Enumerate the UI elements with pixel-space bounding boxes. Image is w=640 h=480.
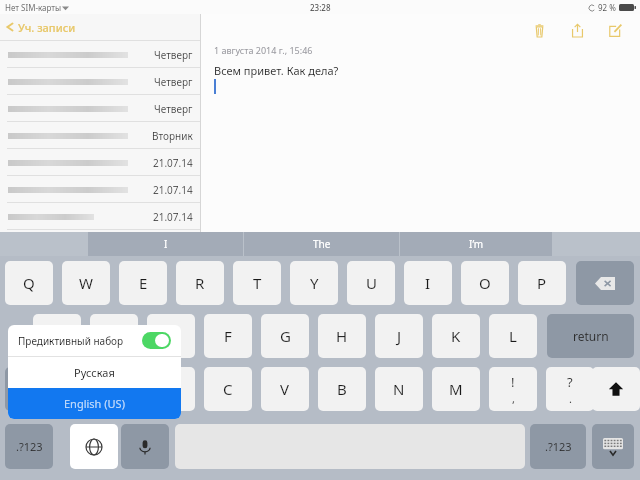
staticText: W [79, 273, 93, 293]
button[interactable]: Shift [5, 367, 81, 411]
staticText: E [139, 273, 148, 293]
staticText: Русская [74, 365, 115, 380]
button[interactable]: Предиктивный набор [8, 325, 181, 356]
button[interactable]: 21.07.14 [0, 203, 200, 230]
staticText: .?123 [545, 439, 572, 454]
button[interactable]: P [518, 261, 566, 305]
staticText: Q [23, 273, 35, 293]
button[interactable]: Delete [526, 17, 552, 43]
button[interactable]: A [33, 314, 81, 358]
staticText: Вторник [152, 129, 193, 143]
staticText: D [166, 326, 177, 346]
staticText: 21.07.14 [153, 183, 193, 197]
staticText: F [224, 326, 232, 346]
staticText: Уч. записи [18, 20, 76, 35]
button[interactable]: Русская [8, 357, 181, 388]
button[interactable]: I’m [400, 232, 552, 256]
staticText: 92 % [598, 2, 616, 13]
staticText: O [479, 273, 491, 293]
button[interactable]: The [244, 232, 399, 256]
staticText: I [425, 273, 431, 293]
button[interactable]: 21.07.14 [0, 149, 200, 176]
button[interactable]: Y [290, 261, 338, 305]
button[interactable]: B [318, 367, 366, 411]
staticText: The [313, 237, 331, 251]
staticText: return [573, 328, 609, 344]
staticText: S [110, 326, 119, 346]
button[interactable]: H [318, 314, 366, 358]
staticText: I [164, 237, 168, 251]
staticText: Четверг [154, 48, 193, 62]
button[interactable]: Q [5, 261, 53, 305]
button[interactable]: O [461, 261, 509, 305]
button[interactable]: Dictation [121, 424, 169, 469]
button[interactable]: T [233, 261, 281, 305]
button[interactable]: Вторник [0, 122, 200, 149]
button[interactable]: ! [489, 367, 537, 411]
button[interactable]: .?123 [530, 424, 586, 469]
staticText: Z [110, 379, 119, 399]
staticText: L [509, 326, 517, 346]
button[interactable]: E [119, 261, 167, 305]
button[interactable]: Change keyboard [70, 424, 118, 469]
button[interactable]: 21.07.14 [0, 176, 200, 203]
button[interactable]: I [88, 232, 243, 256]
staticText: , [512, 391, 515, 406]
staticText: J [397, 326, 402, 346]
button[interactable]: S [90, 314, 138, 358]
button[interactable]: Backspace [576, 261, 634, 305]
staticText: U [366, 273, 377, 293]
staticText: . [569, 391, 572, 406]
button[interactable]: X [147, 367, 195, 411]
staticText: V [280, 379, 290, 399]
button[interactable]: R [176, 261, 224, 305]
button[interactable]: J [375, 314, 423, 358]
button[interactable]: N [375, 367, 423, 411]
staticText: Четверг [154, 75, 193, 89]
button[interactable]: Четверг [0, 68, 200, 95]
staticText: 23:28 [310, 2, 331, 13]
button[interactable]: Shift right [592, 367, 640, 411]
staticText: C [223, 379, 233, 399]
staticText: G [280, 326, 291, 346]
staticText: R [195, 273, 205, 293]
button[interactable]: V [261, 367, 309, 411]
staticText: Всем привет. Как дела? [214, 63, 339, 78]
staticText: Y [310, 273, 319, 293]
staticText: N [393, 379, 405, 399]
button[interactable]: D [147, 314, 195, 358]
staticText: .?123 [16, 439, 43, 454]
button[interactable]: Уч. записи [0, 14, 200, 40]
staticText: I’m [469, 237, 484, 251]
staticText: Предиктивный набор [18, 334, 142, 348]
button[interactable]: Четверг [0, 95, 200, 122]
staticText: Нет SIM-карты [5, 2, 62, 13]
button[interactable]: Hide keyboard [592, 424, 634, 469]
button[interactable]: return [547, 314, 634, 358]
button[interactable]: Compose [602, 17, 628, 43]
button[interactable]: W [62, 261, 110, 305]
staticText: K [451, 326, 461, 346]
button[interactable]: M [432, 367, 480, 411]
button[interactable]: .?123 [5, 424, 53, 469]
button[interactable]: Z [90, 367, 138, 411]
button[interactable]: K [432, 314, 480, 358]
staticText: English (US) [64, 396, 125, 411]
button[interactable]: ? [546, 367, 594, 411]
button[interactable]: U [347, 261, 395, 305]
staticText: Четверг [154, 102, 193, 116]
button[interactable]: I [404, 261, 452, 305]
staticText: T [253, 273, 262, 293]
button[interactable]: Четверг [0, 41, 200, 68]
staticText: A [52, 326, 62, 346]
button[interactable]: Share [564, 17, 590, 43]
button[interactable]: G [261, 314, 309, 358]
staticText: ! [511, 373, 515, 391]
staticText: X [167, 379, 176, 399]
button[interactable]: F [204, 314, 252, 358]
staticText: P [537, 273, 547, 293]
button[interactable]: English (US) [8, 388, 181, 419]
button[interactable]: C [204, 367, 252, 411]
button[interactable]: L [489, 314, 537, 358]
